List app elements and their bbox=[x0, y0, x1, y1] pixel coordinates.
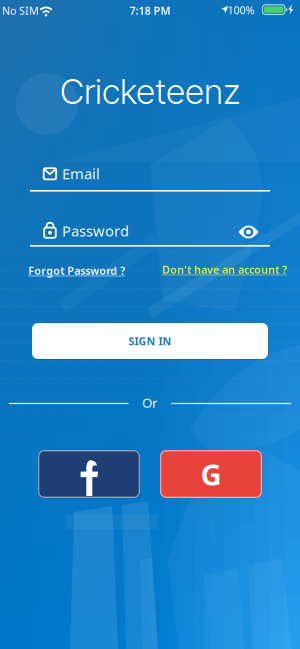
button[interactable] bbox=[38, 450, 140, 498]
staticText: Forgot Password ? bbox=[28, 263, 125, 278]
staticText: 100% bbox=[228, 3, 255, 17]
staticText: Or bbox=[142, 394, 158, 411]
button[interactable]: Forgot Password ? bbox=[28, 263, 158, 278]
staticText: No SIM bbox=[2, 4, 39, 18]
staticText: Don't have an account ? bbox=[162, 262, 287, 277]
staticText: Password bbox=[62, 221, 129, 240]
staticText: Email bbox=[62, 164, 100, 183]
button[interactable] bbox=[238, 225, 259, 239]
staticText: G bbox=[200, 454, 221, 493]
button[interactable]: SIGN IN bbox=[32, 323, 268, 359]
button[interactable]: G bbox=[160, 450, 262, 498]
button[interactable]: Don't have an account ? bbox=[127, 262, 287, 277]
staticText: Cricketeenz bbox=[60, 70, 240, 112]
staticText: 7:18 PM bbox=[129, 4, 170, 18]
staticText: SIGN IN bbox=[128, 334, 171, 348]
